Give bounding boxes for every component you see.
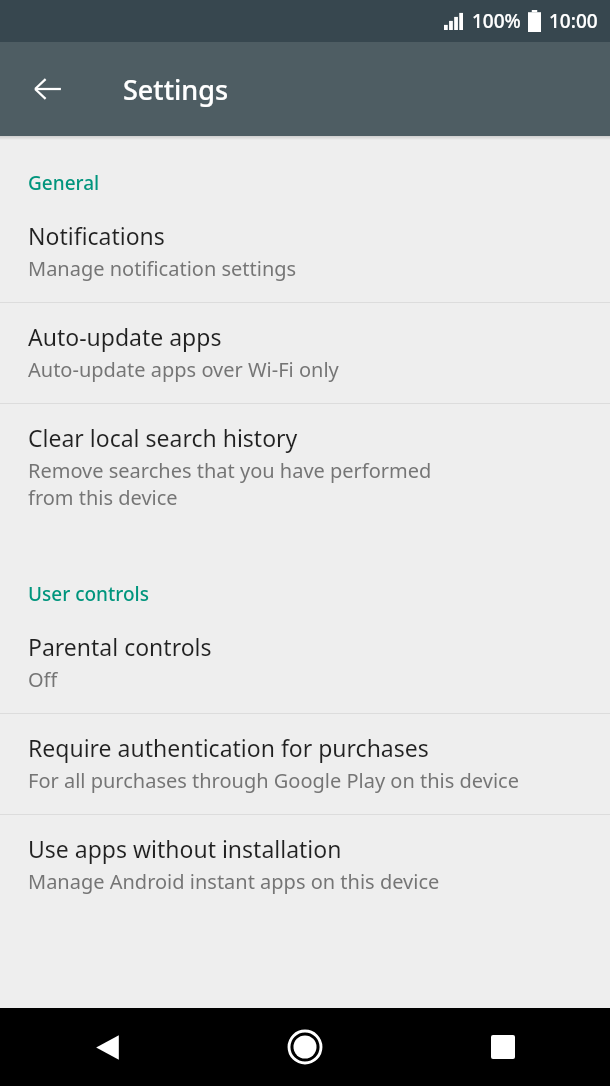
button[interactable]: Clear local search history [0,404,610,531]
staticText: Manage Android instant apps on this devi… [28,868,440,895]
button[interactable]: Require authentication for purchases [0,714,610,814]
staticText: Off [28,666,58,693]
button[interactable]: Recent apps [476,1020,530,1074]
staticText: 10:00 [549,8,598,34]
staticText: Manage notification settings [28,255,297,282]
button[interactable]: Home [278,1020,332,1074]
staticText: Notifications [28,220,165,251]
button[interactable]: Notifications [0,202,610,302]
staticText: For all purchases through Google Play on… [28,767,519,794]
staticText: Use apps without installation [28,833,342,864]
button[interactable]: Back [80,1020,134,1074]
staticText: Settings [123,71,229,108]
staticText: Auto-update apps over Wi-Fi only [28,356,339,383]
staticText: Clear local search history [28,422,298,453]
button[interactable]: Parental controls [0,613,610,713]
button[interactable]: Auto-update apps [0,303,610,403]
staticText: User controls [28,581,149,607]
staticText: Parental controls [28,631,212,662]
staticText: General [28,170,100,196]
button[interactable]: Use apps without installation [0,815,610,915]
staticText: Require authentication for purchases [28,732,429,763]
staticText: Remove searches that you have performed … [28,457,432,511]
staticText: 100% [472,8,521,34]
button[interactable]: Back [18,59,78,119]
staticText: Auto-update apps [28,321,222,352]
